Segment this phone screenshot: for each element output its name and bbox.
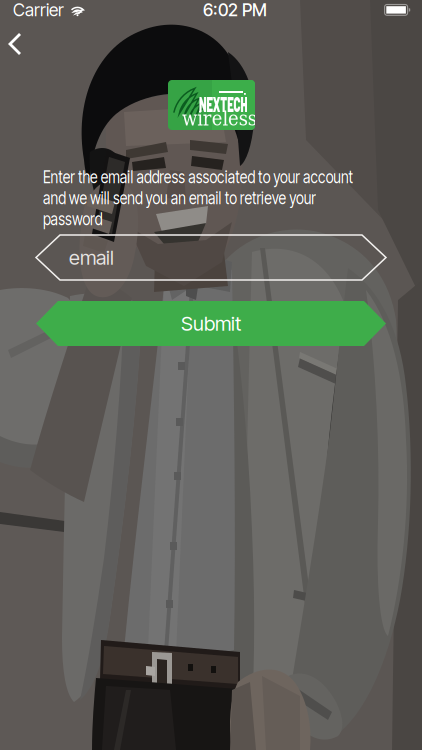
staticText: Carrier <box>13 0 64 20</box>
button[interactable]: Back <box>4 27 38 61</box>
button[interactable]: Submit <box>36 301 386 346</box>
staticText: Submit <box>181 311 241 336</box>
staticText: and we will send you an email to retriev… <box>43 186 402 209</box>
staticText: 6:02 PM <box>203 0 267 20</box>
staticText: wireless <box>182 107 265 130</box>
staticText: NEXTECH <box>199 92 283 116</box>
button[interactable]: email <box>36 235 386 280</box>
staticText: Enter the email address associated to yo… <box>43 165 422 188</box>
staticText: password <box>43 207 121 230</box>
staticText: email <box>69 245 114 270</box>
